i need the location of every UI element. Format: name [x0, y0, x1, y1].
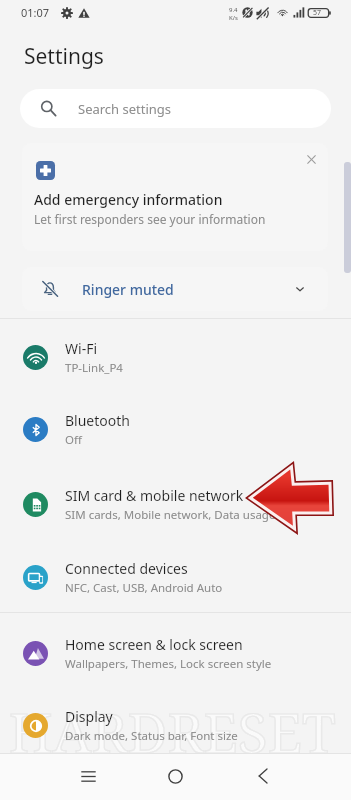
staticText: Ringer muted	[82, 280, 174, 299]
button[interactable]: Display	[0, 689, 351, 762]
staticText: Wallpapers, Themes, Lock screen style	[65, 656, 272, 672]
staticText: K/s	[229, 14, 238, 22]
staticText: NFC, Cast, USB, Android Auto	[65, 580, 223, 596]
button[interactable]: Add emergency information	[22, 143, 328, 251]
staticText: HARDRESET	[9, 694, 336, 769]
button[interactable]: Ringer muted	[22, 267, 328, 311]
staticText: Let first responders see your informatio…	[34, 211, 266, 227]
staticText: SIM card & mobile network	[65, 486, 244, 505]
staticText: 57	[313, 8, 322, 18]
staticText: HARDRESET	[9, 694, 336, 769]
staticText: Bluetooth	[65, 411, 130, 430]
staticText: Dark mode, Status bar, Font size	[65, 728, 238, 744]
button[interactable]: Back	[233, 754, 293, 800]
staticText: Wi-Fi	[65, 339, 98, 358]
staticText: Connected devices	[65, 559, 188, 578]
button[interactable]: Home	[145, 754, 205, 800]
button[interactable]: Dismiss	[300, 148, 322, 170]
staticText: Display	[65, 707, 113, 726]
staticText: 01:07	[21, 5, 50, 20]
staticText: Off	[65, 432, 82, 448]
staticText: Settings	[24, 42, 104, 71]
button[interactable]: Connected devices	[0, 541, 351, 614]
staticText: Search settings	[78, 100, 172, 118]
button[interactable]: Search settings	[20, 89, 331, 128]
staticText: Add emergency information	[34, 190, 223, 209]
staticText: 9.4	[229, 6, 238, 14]
staticText: TP-Link_P4	[65, 360, 123, 376]
staticText: Home screen & lock screen	[65, 635, 243, 654]
button[interactable]: Wi-Fi	[0, 321, 351, 394]
button[interactable]: Recent apps	[58, 754, 118, 800]
staticText: SIM cards, Mobile network, Data usage	[65, 507, 276, 523]
button[interactable]: Home screen & lock screen	[0, 617, 351, 690]
button[interactable]: Bluetooth	[0, 393, 351, 466]
button[interactable]: SIM card & mobile network	[0, 468, 351, 541]
